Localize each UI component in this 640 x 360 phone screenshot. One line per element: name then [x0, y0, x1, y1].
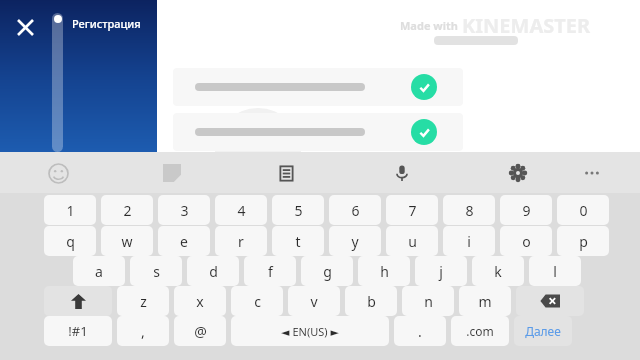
button[interactable]: d	[187, 256, 239, 286]
staticText: d	[209, 262, 218, 281]
staticText: !#1	[68, 322, 88, 340]
button[interactable]: i	[443, 226, 495, 256]
button[interactable]: r	[215, 226, 267, 256]
button[interactable]: More options	[576, 157, 608, 189]
staticText: 4	[237, 201, 246, 220]
staticText: 9	[522, 201, 531, 220]
button[interactable]: y	[329, 226, 381, 256]
staticText: n	[424, 292, 433, 311]
button[interactable]	[44, 286, 112, 316]
staticText: h	[380, 262, 389, 281]
staticText: c	[254, 292, 261, 311]
button[interactable]: m	[459, 286, 511, 316]
button[interactable]: a	[73, 256, 125, 286]
button[interactable]: c	[231, 286, 283, 316]
button[interactable]	[173, 113, 463, 151]
staticText: @	[194, 322, 207, 341]
button[interactable]: 4	[215, 195, 267, 225]
staticText: e	[180, 232, 188, 251]
staticText: q	[66, 232, 75, 251]
staticText: i	[467, 232, 471, 251]
button[interactable]: .	[394, 316, 446, 346]
staticText: r	[238, 232, 244, 251]
staticText: Регистрация	[72, 16, 141, 31]
button[interactable]: .com	[451, 316, 509, 346]
staticText: 2	[123, 201, 132, 220]
button[interactable]: k	[472, 256, 524, 286]
staticText: l	[553, 262, 557, 281]
button[interactable]: Emoji	[42, 157, 74, 189]
staticText: ◄ EN(US) ►	[281, 324, 339, 339]
button[interactable]: Close	[10, 12, 40, 42]
staticText: o	[522, 232, 531, 251]
button[interactable]: @	[174, 316, 226, 346]
button[interactable]: f	[244, 256, 296, 286]
staticText: 7	[408, 201, 417, 220]
button[interactable]: 6	[329, 195, 381, 225]
staticText: 6	[351, 201, 360, 220]
button[interactable]: g	[301, 256, 353, 286]
staticText: Made with	[400, 18, 458, 33]
button[interactable]: 0	[557, 195, 609, 225]
staticText: g	[323, 262, 332, 281]
staticText: t	[295, 232, 301, 251]
button[interactable]: 8	[443, 195, 495, 225]
button[interactable]: Далее	[514, 316, 572, 346]
staticText: k	[494, 262, 502, 281]
staticText: 0	[579, 201, 588, 220]
staticText: b	[367, 292, 376, 311]
staticText: f	[268, 262, 273, 281]
button[interactable]: 7	[386, 195, 438, 225]
button[interactable]: ,	[117, 316, 169, 346]
button[interactable]: 5	[272, 195, 324, 225]
button[interactable]: ◄ EN(US) ►	[231, 316, 389, 346]
staticText: 5	[294, 201, 303, 220]
button[interactable]: u	[386, 226, 438, 256]
button[interactable]: e	[158, 226, 210, 256]
button[interactable]: p	[557, 226, 609, 256]
button[interactable]: j	[415, 256, 467, 286]
staticText: .	[418, 322, 422, 341]
staticText: m	[478, 292, 492, 311]
button[interactable]: Settings	[502, 157, 534, 189]
button[interactable]: h	[358, 256, 410, 286]
button[interactable]: Voice input	[386, 157, 418, 189]
staticText: y	[351, 232, 359, 251]
staticText: v	[310, 292, 318, 311]
button[interactable]: v	[288, 286, 340, 316]
staticText: w	[121, 232, 133, 251]
button[interactable]: 3	[158, 195, 210, 225]
staticText: s	[153, 262, 160, 281]
button[interactable]: w	[101, 226, 153, 256]
staticText: p	[579, 232, 588, 251]
button[interactable]: !#1	[44, 316, 112, 346]
button[interactable]: Stickers	[156, 157, 188, 189]
button[interactable]: Clipboard	[270, 157, 302, 189]
staticText: 8	[465, 201, 474, 220]
button[interactable]	[173, 68, 463, 106]
button[interactable]: o	[500, 226, 552, 256]
staticText: j	[439, 262, 443, 281]
button[interactable]: n	[402, 286, 454, 316]
button[interactable]: x	[174, 286, 226, 316]
button[interactable]: t	[272, 226, 324, 256]
button[interactable]: q	[44, 226, 96, 256]
button[interactable]: z	[117, 286, 169, 316]
staticText: .com	[466, 323, 494, 339]
button[interactable]: s	[130, 256, 182, 286]
staticText: Далее	[525, 323, 561, 339]
staticText: x	[196, 292, 204, 311]
button[interactable]: Backspace	[516, 286, 584, 316]
button[interactable]: b	[345, 286, 397, 316]
button[interactable]: 1	[44, 195, 96, 225]
staticText: ,	[141, 322, 145, 341]
staticText: 1	[66, 201, 75, 220]
staticText: a	[95, 262, 103, 281]
staticText: u	[408, 232, 417, 251]
button[interactable]: 9	[500, 195, 552, 225]
button[interactable]: 2	[101, 195, 153, 225]
button[interactable]: l	[529, 256, 581, 286]
staticText: 3	[180, 201, 189, 220]
staticText: z	[140, 292, 147, 311]
staticText: KINEMASTER	[462, 12, 591, 39]
